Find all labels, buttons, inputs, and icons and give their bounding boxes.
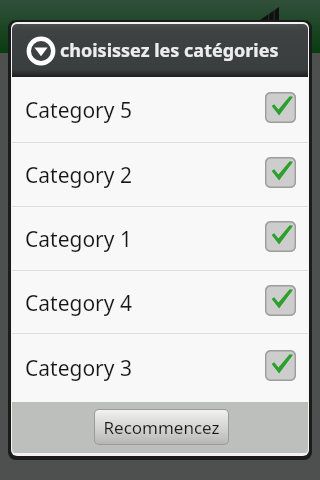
other: Signal strength: [260, 7, 279, 20]
staticText: Recommencez: [103, 416, 220, 439]
button[interactable]: Category selected: [265, 92, 296, 123]
button[interactable]: Category 1: [12, 207, 308, 270]
staticText: choisissez les catégories: [60, 38, 279, 63]
button[interactable]: Category selected: [265, 350, 296, 381]
button[interactable]: Recommencez: [95, 410, 228, 444]
button[interactable]: Category selected: [265, 221, 296, 252]
staticText: Category 2: [25, 161, 265, 190]
button[interactable]: Category 2: [12, 143, 308, 206]
button[interactable]: Category 3: [12, 334, 308, 400]
button[interactable]: Category selected: [265, 157, 296, 188]
button[interactable]: Category selected: [265, 285, 296, 316]
staticText: Category 3: [25, 354, 265, 383]
button[interactable]: Category 4: [12, 271, 308, 333]
button[interactable]: Category 5: [12, 77, 308, 142]
other: Expand: [26, 36, 56, 66]
staticText: Category 4: [25, 289, 265, 318]
staticText: Category 1: [25, 225, 265, 254]
button[interactable]: Expand: [12, 24, 308, 77]
staticText: Category 5: [25, 96, 265, 125]
